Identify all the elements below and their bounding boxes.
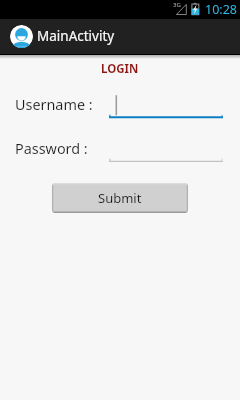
button[interactable]	[109, 95, 223, 121]
staticText: MainActivity	[37, 27, 115, 45]
staticText: LOGIN	[101, 61, 139, 77]
button[interactable]: App icon	[0, 19, 240, 54]
button[interactable]: Submit	[52, 183, 188, 213]
staticText: 3G	[173, 1, 181, 9]
other: App icon	[10, 25, 33, 48]
staticText: Submit	[98, 189, 142, 207]
staticText: Password :	[15, 139, 88, 159]
staticText: 10:28	[205, 1, 237, 18]
staticText: Username :	[15, 95, 93, 115]
button[interactable]	[109, 139, 223, 165]
